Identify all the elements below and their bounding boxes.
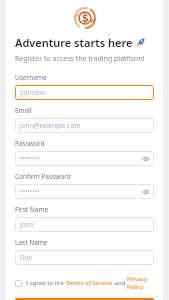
staticText: I agree to the bbox=[26, 279, 66, 287]
button[interactable]: •••••••• bbox=[15, 151, 154, 166]
staticText: John bbox=[20, 220, 34, 229]
staticText: and bbox=[113, 279, 127, 287]
button[interactable]: Sign up bbox=[15, 298, 154, 300]
staticText: First Name bbox=[15, 205, 49, 214]
staticText: Adventure starts here bbox=[15, 35, 133, 50]
button[interactable]: john@example.com bbox=[15, 118, 154, 133]
staticText: •••••••• bbox=[20, 154, 40, 163]
button[interactable]: johndoe bbox=[15, 85, 154, 100]
staticText: •••••••• bbox=[20, 187, 40, 196]
button[interactable]: Privacy Policy bbox=[127, 275, 154, 291]
staticText: johndoe bbox=[20, 88, 46, 97]
staticText: john@example.com bbox=[20, 121, 81, 130]
button[interactable]: I agree to the bbox=[15, 275, 154, 291]
staticText: Last Name bbox=[15, 238, 48, 247]
staticText: Email bbox=[15, 106, 32, 115]
button[interactable]: Terms of Service bbox=[66, 279, 113, 287]
staticText: Register to access the trading platform! bbox=[15, 54, 145, 64]
button[interactable]: Show password bbox=[141, 187, 150, 196]
staticText: Doe bbox=[20, 253, 33, 262]
button[interactable]: Show password bbox=[141, 154, 150, 163]
button[interactable]: •••••••• bbox=[15, 184, 154, 199]
staticText: Confirm Password bbox=[15, 172, 71, 181]
staticText: Password bbox=[15, 139, 45, 148]
staticText: Username bbox=[15, 73, 47, 82]
button[interactable]: John bbox=[15, 217, 154, 232]
button[interactable]: Doe bbox=[15, 250, 154, 265]
